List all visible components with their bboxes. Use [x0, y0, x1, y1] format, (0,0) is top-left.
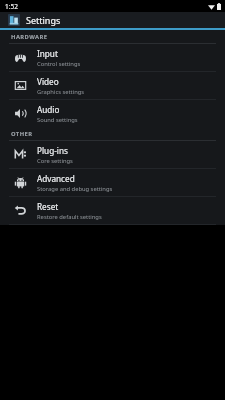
button[interactable]: Reset [0, 197, 225, 224]
button[interactable]: Video [0, 72, 225, 99]
button[interactable]: Audio [0, 100, 225, 127]
staticText: Restore default settings [37, 213, 102, 221]
button[interactable]: Settings [0, 12, 225, 28]
staticText: Control settings [37, 60, 81, 68]
staticText: Audio [37, 104, 60, 115]
staticText: Core settings [37, 157, 73, 165]
staticText: Settings [26, 14, 61, 26]
staticText: 1:52 [5, 2, 18, 11]
staticText: Storage and debug settings [37, 185, 113, 193]
staticText: Reset [37, 201, 59, 212]
staticText: Input [37, 48, 58, 59]
staticText: Graphics settings [37, 88, 85, 96]
staticText: Advanced [37, 173, 75, 184]
button[interactable]: Input [0, 44, 225, 71]
staticText: Video [37, 76, 59, 87]
staticText: Sound settings [37, 116, 78, 124]
staticText: HARDWARE [11, 33, 48, 41]
button[interactable]: Plug-ins [0, 141, 225, 168]
staticText: OTHER [11, 130, 33, 138]
staticText: Plug-ins [37, 145, 68, 156]
button[interactable]: Advanced [0, 169, 225, 196]
